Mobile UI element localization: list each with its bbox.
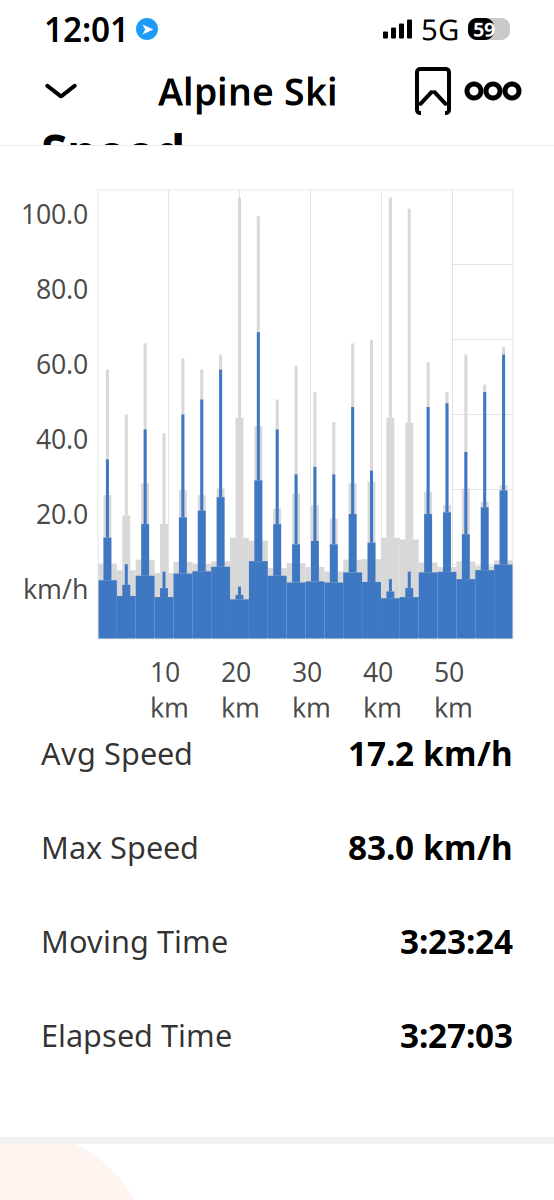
staticText: 80.0 — [36, 271, 88, 306]
staticText: Max Speed — [41, 827, 199, 867]
staticText: 3:27:03 — [400, 1013, 513, 1057]
staticText: 5G — [421, 9, 459, 48]
staticText: Moving Time — [41, 921, 228, 961]
button[interactable]: Avg Speed — [0, 706, 554, 800]
button[interactable]: Elapsed Time — [0, 988, 554, 1082]
staticText: Alpine Ski — [158, 66, 338, 116]
staticText: km/h — [23, 571, 88, 606]
staticText: 60.0 — [36, 346, 88, 381]
staticText: 30 km — [292, 654, 331, 725]
staticText: Avg Speed — [41, 733, 193, 773]
staticText: ➤ — [140, 20, 153, 38]
button[interactable]: More options — [462, 60, 524, 122]
staticText: 100.0 — [21, 196, 88, 231]
staticText: 20.0 — [36, 496, 88, 531]
button[interactable]: Collapse — [30, 60, 92, 122]
button[interactable]: Max Speed — [0, 800, 554, 894]
button[interactable]: Moving Time — [0, 894, 554, 988]
staticText: 40 km — [363, 654, 402, 725]
staticText: 10 km — [150, 654, 189, 725]
staticText: 17.2 km/h — [348, 731, 513, 775]
staticText: 83.0 km/h — [348, 825, 513, 869]
staticText: Elapsed Time — [41, 1015, 232, 1055]
staticText: 59 — [473, 16, 495, 42]
staticText: 3:23:24 — [400, 919, 513, 963]
staticText: Speed — [41, 120, 185, 183]
staticText: 12:01 — [44, 7, 129, 51]
staticText: 50 km — [434, 654, 473, 725]
button[interactable]: Bookmark — [404, 60, 462, 122]
staticText: 20 km — [221, 654, 260, 725]
staticText: 40.0 — [36, 421, 88, 456]
